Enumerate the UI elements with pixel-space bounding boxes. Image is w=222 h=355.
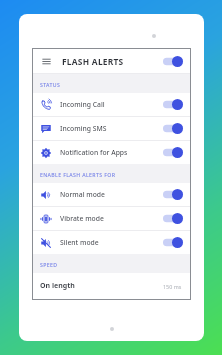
staticText: Vibrate mode: [60, 214, 163, 223]
button[interactable]: Incoming SMS: [33, 117, 190, 140]
staticText: Normal mode: [60, 190, 163, 199]
staticText: Incoming SMS: [60, 124, 163, 133]
button[interactable]: Silent mode: [33, 231, 190, 254]
staticText: Notification for Apps: [60, 148, 163, 157]
button[interactable]: Notification for Apps: [33, 141, 190, 164]
button[interactable]: Master flash alerts toggle: [163, 56, 183, 67]
staticText: Silent mode: [60, 238, 163, 247]
staticText: STATUS: [40, 81, 61, 88]
staticText: FLASH ALERTS: [62, 56, 163, 67]
staticText: 150 ms: [163, 283, 182, 290]
staticText: On length: [40, 281, 163, 291]
staticText: Incoming Call: [60, 100, 163, 109]
staticText: SPEED: [40, 261, 58, 268]
button[interactable]: Normal mode: [33, 183, 190, 206]
button[interactable]: On length: [33, 273, 190, 299]
staticText: ENABLE FLASH ALERTS FOR: [40, 171, 116, 178]
button[interactable]: Incoming Call: [33, 93, 190, 116]
button[interactable]: Open navigation drawer: [39, 54, 53, 68]
button[interactable]: Vibrate mode: [33, 207, 190, 230]
